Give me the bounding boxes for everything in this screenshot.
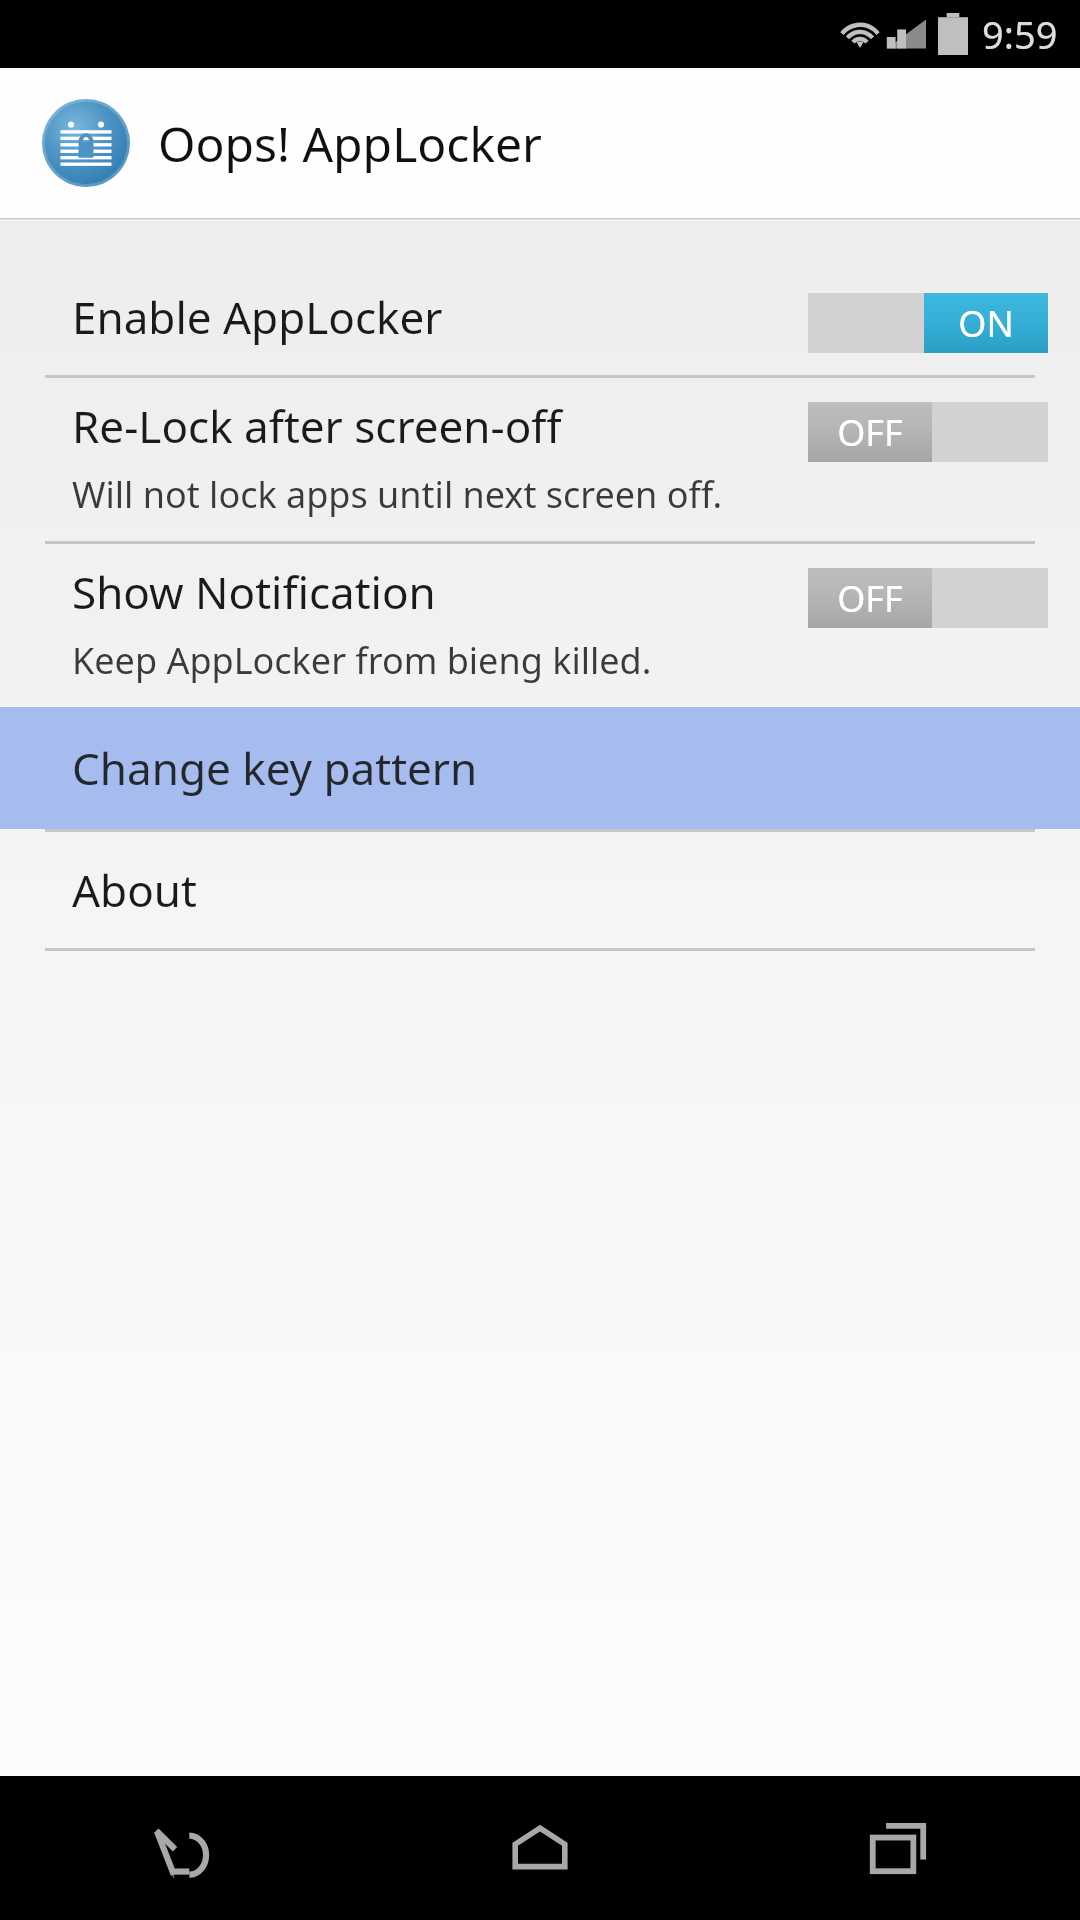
button[interactable]: Show Notification xyxy=(0,544,1080,707)
staticText: 9:59 xyxy=(982,8,1058,60)
button[interactable]: Back xyxy=(105,1776,255,1920)
button[interactable]: Home xyxy=(465,1776,615,1920)
button[interactable]: About xyxy=(0,832,1080,948)
button[interactable]: Change key pattern xyxy=(0,707,1080,829)
staticText: Keep AppLocker from bieng killed. xyxy=(72,636,652,685)
staticText: Oops! AppLocker xyxy=(158,111,542,176)
staticText: Change key pattern xyxy=(72,738,478,798)
staticText: Show Notification xyxy=(72,562,436,622)
button[interactable]: Toggle on xyxy=(808,293,1048,353)
staticText: Will not lock apps until next screen off… xyxy=(72,470,723,519)
staticText: ON xyxy=(958,299,1014,348)
button[interactable]: Toggle off xyxy=(808,402,1048,462)
button[interactable]: Enable AppLocker xyxy=(0,269,1080,375)
button[interactable]: Re-Lock after screen-off xyxy=(0,378,1080,541)
staticText: Enable AppLocker xyxy=(72,287,443,347)
staticText: About xyxy=(72,860,197,920)
staticText: Re-Lock after screen-off xyxy=(72,396,562,456)
staticText: OFF xyxy=(837,408,903,457)
button[interactable]: Toggle off xyxy=(808,568,1048,628)
button[interactable]: Recent apps xyxy=(825,1776,975,1920)
staticText: OFF xyxy=(837,574,903,623)
